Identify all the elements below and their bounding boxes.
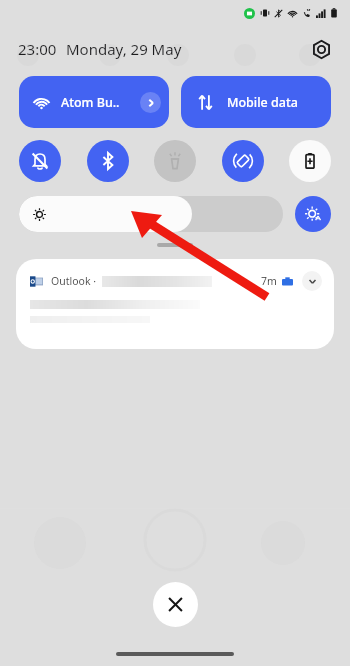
button[interactable]: Mobile data xyxy=(181,76,331,128)
button[interactable]: Outlook · xyxy=(16,259,334,349)
staticText: Monday, 29 May xyxy=(66,39,182,59)
button[interactable]: Flashlight xyxy=(154,140,196,182)
button[interactable]: Close xyxy=(153,582,198,627)
button[interactable] xyxy=(19,196,283,232)
button[interactable]: Auto brightness xyxy=(295,196,331,232)
button[interactable]: Mute xyxy=(19,140,61,182)
staticText: Outlook · xyxy=(51,274,97,288)
button[interactable]: Battery saver xyxy=(289,140,331,182)
staticText: Mobile data xyxy=(227,94,298,111)
staticText: 23:00 xyxy=(18,39,57,59)
staticText: 7m xyxy=(261,274,277,288)
button[interactable]: Atom Bu.. xyxy=(19,76,169,128)
staticText: Atom Bu.. xyxy=(61,94,120,111)
button[interactable]: Settings xyxy=(308,36,334,62)
button[interactable]: Bluetooth xyxy=(87,140,129,182)
button[interactable]: Wi-Fi details xyxy=(140,92,161,113)
button[interactable]: Auto rotate xyxy=(222,140,264,182)
button[interactable]: Expand notification xyxy=(302,271,322,291)
